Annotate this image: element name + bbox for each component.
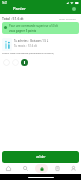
button[interactable]: Search (17, 163, 33, 174)
button[interactable]: valider (2, 151, 79, 163)
staticText: valider (36, 155, 46, 159)
staticText: Tu recois : 51.6 dt (14, 44, 37, 48)
staticText: Pour une commande superieur a 50 dt (9, 24, 58, 28)
button[interactable]: Livraison (12, 59, 19, 66)
button[interactable]: Delete all (72, 7, 76, 11)
staticText: 9:41 (2, 1, 8, 5)
button[interactable]: Recuperation (3, 59, 10, 66)
button[interactable]: Vider le panier (59, 17, 77, 20)
button[interactable]: Home (0, 163, 17, 174)
staticText: Tu achetes : Boissons 1.5 L (14, 39, 49, 43)
button[interactable]: Selected mode (21, 59, 28, 66)
button[interactable]: Orders (49, 163, 65, 174)
staticText: Choisir Mode Commande (Recuperation/Livr… (2, 52, 54, 55)
staticText: Total : 51.6 dt (2, 16, 24, 21)
button[interactable]: Profile (65, 163, 81, 174)
staticText: Panier (13, 6, 26, 12)
button[interactable]: Cart (33, 163, 49, 174)
staticText: vous gagner 5 points (9, 29, 36, 33)
